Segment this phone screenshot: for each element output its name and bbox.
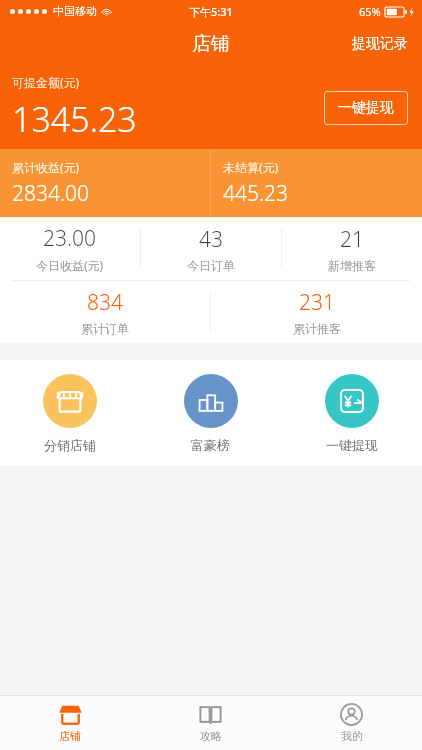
staticText: 累计订单 xyxy=(81,321,129,336)
staticText: 一键提现 xyxy=(338,99,394,117)
button[interactable]: 未结算(元) xyxy=(211,149,422,217)
staticText: 提现记录 xyxy=(352,35,408,53)
staticText: 834 xyxy=(87,288,123,317)
button[interactable]: 分销店铺 xyxy=(0,360,140,466)
button[interactable]: 一键提现 xyxy=(281,360,422,466)
button[interactable]: 我的 xyxy=(281,696,422,750)
button[interactable]: 一键提现 xyxy=(324,91,408,125)
button[interactable]: 店铺 xyxy=(0,696,140,750)
staticText: 累计推客 xyxy=(293,321,341,336)
staticText: 攻略 xyxy=(200,729,222,743)
staticText: 21 xyxy=(340,225,364,254)
staticText: 231 xyxy=(299,288,335,317)
button[interactable]: 43 xyxy=(141,217,281,280)
staticText: 分销店铺 xyxy=(44,437,96,453)
staticText: 我的 xyxy=(341,729,363,743)
staticText: 23.00 xyxy=(43,224,97,253)
staticText: 可提金额(元) xyxy=(12,74,80,90)
button[interactable]: 231 xyxy=(211,281,422,343)
staticText: 未结算(元) xyxy=(223,159,279,175)
staticText: 今日订单 xyxy=(187,258,235,273)
staticText: 445.23 xyxy=(223,179,289,208)
button[interactable]: 21 xyxy=(282,217,422,280)
staticText: 一键提现 xyxy=(326,437,378,453)
button[interactable]: 累计收益(元) xyxy=(0,149,210,217)
staticText: 新增推客 xyxy=(328,258,376,273)
staticText: 中国移动 xyxy=(53,4,97,18)
staticText: 43 xyxy=(199,225,223,254)
button[interactable]: 富豪榜 xyxy=(140,360,281,466)
staticText: 2834.00 xyxy=(12,179,90,208)
button[interactable]: 23.00 xyxy=(0,217,140,280)
staticText: 累计收益(元) xyxy=(12,159,80,175)
button[interactable]: 834 xyxy=(0,281,210,343)
button[interactable]: 提现记录 xyxy=(338,27,422,61)
staticText: 店铺 xyxy=(192,32,230,56)
staticText: 富豪榜 xyxy=(191,437,230,453)
staticText: 1345.23 xyxy=(12,96,137,142)
staticText: 今日收益(元) xyxy=(36,257,104,273)
staticText: 店铺 xyxy=(59,729,81,743)
button[interactable]: 攻略 xyxy=(140,696,281,750)
staticText: 65% xyxy=(359,4,381,19)
staticText: 下午5:31 xyxy=(189,4,233,19)
